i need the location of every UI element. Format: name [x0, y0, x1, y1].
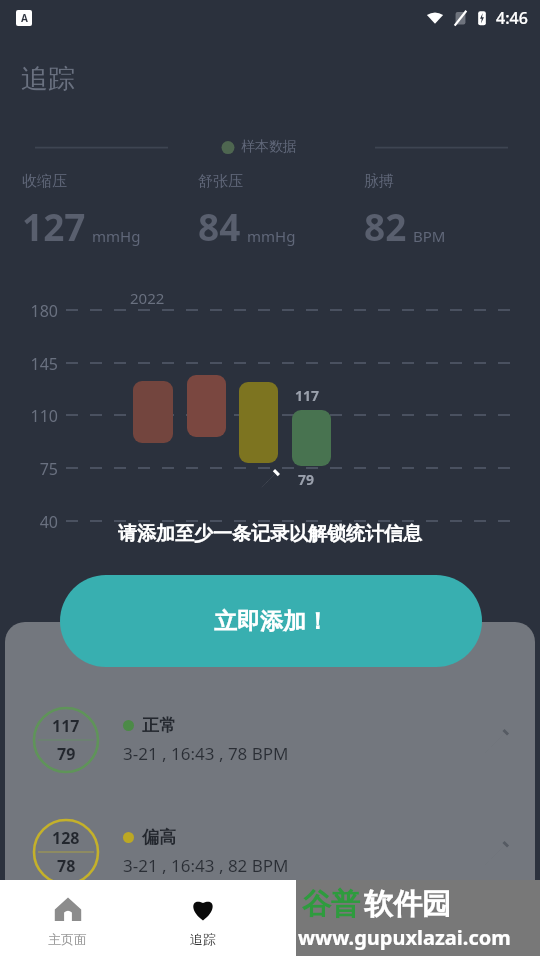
staticText: 79	[298, 470, 315, 489]
button[interactable]: 117	[5, 700, 535, 780]
staticText: 请添加至少一条记录以解锁统计信息	[0, 522, 540, 546]
staticText: 84	[198, 201, 241, 251]
staticText: 脉搏	[364, 172, 394, 191]
staticText: 82	[364, 201, 407, 251]
staticText: 75	[16, 458, 58, 480]
staticText: 145	[16, 353, 58, 375]
staticText: BPM	[413, 226, 446, 246]
staticText: 117	[295, 386, 320, 405]
staticText: 2022	[130, 288, 165, 308]
staticText: 79	[57, 743, 76, 765]
button[interactable]: 立即添加！	[60, 575, 482, 667]
staticText: 立即添加！	[214, 607, 329, 636]
staticText: 正常	[142, 715, 176, 736]
staticText: 127	[22, 201, 86, 251]
staticText: 谷普	[302, 886, 360, 923]
staticText: 78	[57, 855, 76, 877]
staticText: A	[21, 11, 28, 25]
staticText: mmHg	[247, 226, 296, 246]
staticText: 117	[52, 715, 80, 737]
staticText: 主页面	[48, 931, 87, 947]
staticText: 110	[16, 405, 58, 427]
staticText: www.gupuxlazai.com	[298, 924, 511, 951]
staticText: 追踪	[190, 931, 216, 947]
staticText: 软件园	[364, 886, 451, 923]
staticText: 舒张压	[198, 172, 243, 191]
staticText: 40	[16, 511, 58, 533]
staticText: 3-21 , 16:43 , 78 BPM	[123, 742, 289, 765]
staticText: mmHg	[92, 226, 141, 246]
button[interactable]: 主页面	[0, 880, 135, 960]
staticText: 样本数据	[241, 138, 297, 156]
staticText: 偏高	[142, 827, 176, 848]
staticText: 128	[52, 827, 80, 849]
button[interactable]: 追踪	[135, 880, 270, 960]
staticText: 4:46	[496, 7, 528, 29]
staticText: 3-21 , 16:43 , 82 BPM	[123, 854, 289, 877]
button[interactable]: 128	[5, 812, 535, 892]
staticText: 180	[16, 300, 58, 322]
staticText: 收缩压	[22, 172, 67, 191]
staticText: 追踪	[21, 62, 75, 96]
